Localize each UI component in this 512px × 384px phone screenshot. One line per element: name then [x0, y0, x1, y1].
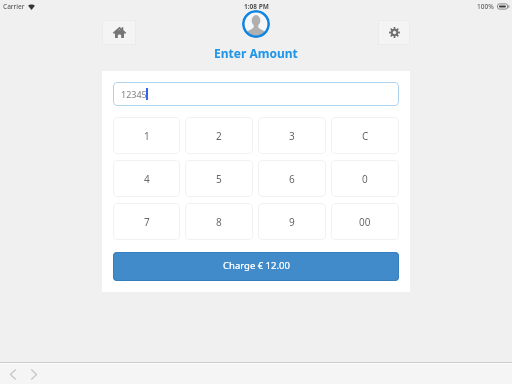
staticText: 00 [359, 215, 371, 229]
staticText: 1 [144, 129, 150, 143]
button[interactable]: Forward [28, 366, 40, 382]
staticText: 3 [289, 129, 295, 143]
staticText: C [362, 129, 369, 143]
button[interactable]: 9 [258, 203, 326, 240]
staticText: 100% [477, 2, 494, 11]
button[interactable]: 00 [331, 203, 399, 240]
button[interactable]: 0 [331, 160, 399, 197]
staticText: 6 [289, 172, 295, 186]
button[interactable]: C [331, 117, 399, 154]
button[interactable]: 3 [258, 117, 326, 154]
button[interactable]: 2 [185, 117, 253, 154]
staticText: 9 [289, 215, 295, 229]
staticText: 8 [216, 215, 222, 229]
button[interactable]: Home [102, 20, 136, 45]
button[interactable]: Profile [242, 10, 270, 38]
staticText: Charge € 12.00 [223, 259, 290, 272]
button[interactable]: Charge € 12.00 [113, 252, 399, 281]
staticText: 1:08 PM [244, 2, 269, 11]
button[interactable]: 12345 [113, 82, 399, 106]
button[interactable]: 7 [113, 203, 180, 240]
staticText: 4 [144, 172, 150, 186]
button[interactable]: 4 [113, 160, 180, 197]
button[interactable]: 6 [258, 160, 326, 197]
staticText: 5 [216, 172, 222, 186]
staticText: 2 [216, 129, 222, 143]
staticText: Carrier [3, 2, 25, 11]
staticText: 7 [144, 215, 150, 229]
button[interactable]: 1 [113, 117, 180, 154]
button[interactable]: Back [7, 366, 19, 382]
staticText: 12345 [121, 88, 147, 100]
staticText: Enter Amount [214, 45, 298, 61]
button[interactable]: Settings [378, 20, 410, 45]
staticText: 0 [362, 172, 368, 186]
button[interactable]: 8 [185, 203, 253, 240]
button[interactable]: 5 [185, 160, 253, 197]
